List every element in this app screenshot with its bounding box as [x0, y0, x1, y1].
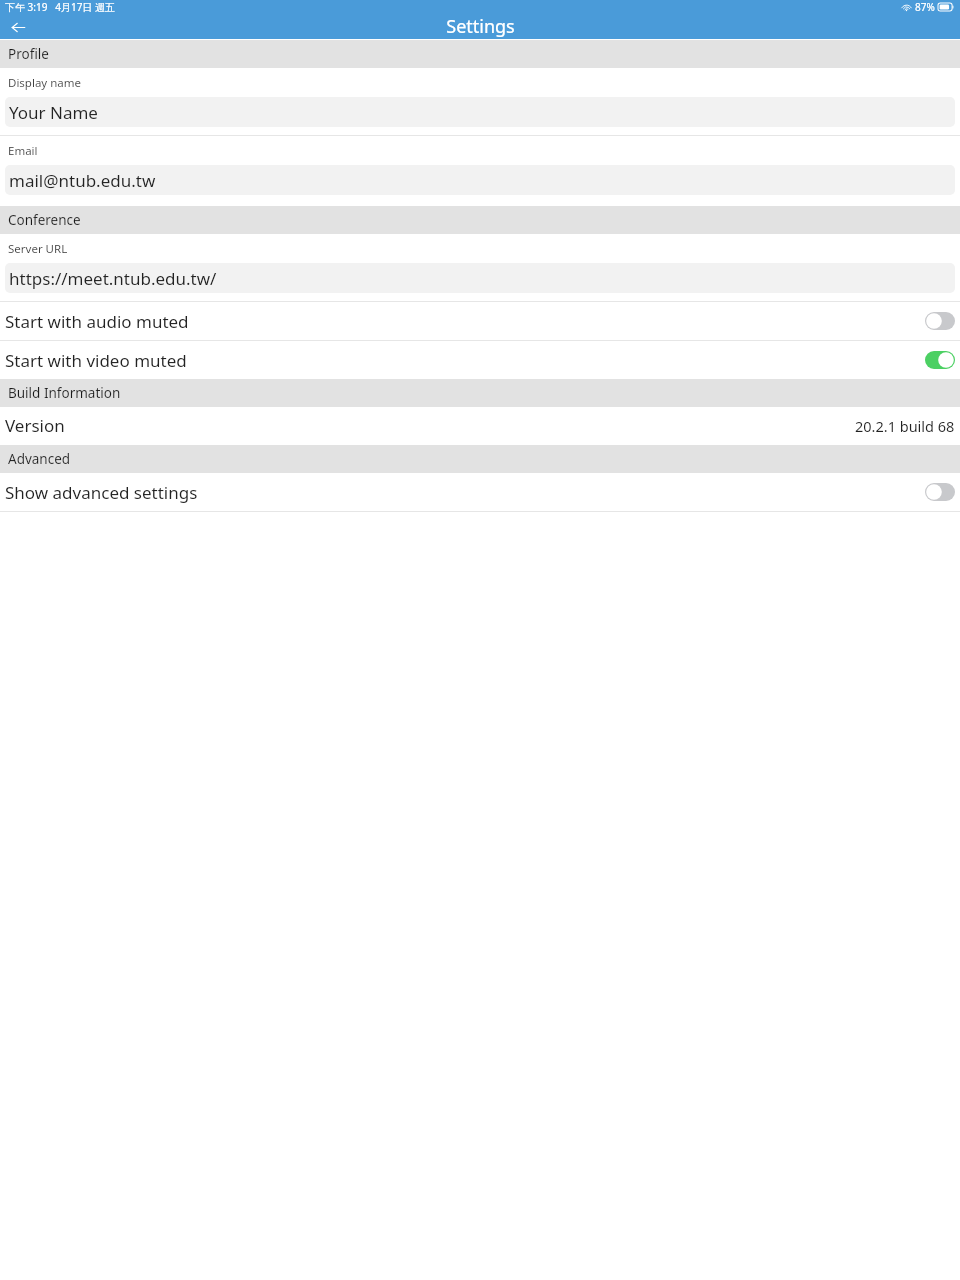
staticText: 20.2.1 build 68 [855, 416, 955, 436]
staticText: Display name [8, 75, 82, 91]
button[interactable]: Show advanced settings [0, 473, 960, 511]
staticText: https://meet.ntub.edu.tw/ [9, 267, 217, 290]
staticText: Start with audio muted [5, 310, 925, 333]
other: Off [925, 483, 955, 501]
button[interactable]: Start with audio muted [0, 302, 960, 340]
staticText: Conference [8, 211, 81, 229]
staticText: Advanced [8, 450, 71, 468]
staticText: mail@ntub.edu.tw [9, 169, 156, 192]
staticText: Settings [446, 14, 515, 39]
staticText: Show advanced settings [5, 481, 925, 504]
other: Off [925, 312, 955, 330]
staticText: 下午 3:19 4月17日 週五 [5, 0, 115, 14]
button[interactable]: Back [6, 15, 30, 39]
button[interactable]: Server URL [0, 234, 960, 301]
staticText: 87% [915, 0, 935, 14]
staticText: Start with video muted [5, 349, 925, 372]
button[interactable]: Start with video muted [0, 341, 960, 379]
staticText: Build Information [8, 384, 121, 402]
staticText: Email [8, 143, 38, 159]
staticText: Server URL [8, 241, 68, 257]
button[interactable]: Display name [0, 68, 960, 135]
staticText: Version [5, 414, 855, 437]
staticText: Profile [8, 45, 49, 63]
button[interactable]: Email [0, 136, 960, 203]
other: On [925, 351, 955, 369]
staticText: Your Name [9, 101, 98, 124]
button[interactable]: Version [0, 407, 960, 444]
